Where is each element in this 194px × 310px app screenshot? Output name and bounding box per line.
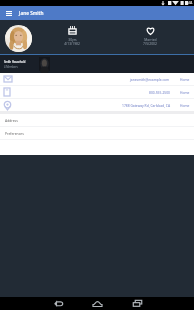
button[interactable]: Preferences xyxy=(0,127,194,139)
button[interactable]: Open navigation menu xyxy=(0,6,17,20)
staticText: 4 Members xyxy=(4,65,18,69)
button[interactable]: Married xyxy=(110,26,190,45)
staticText: Smith Household xyxy=(4,60,26,64)
button[interactable]: Address xyxy=(0,114,194,126)
button[interactable]: janesmith@example.com xyxy=(0,73,194,85)
staticText: 800-555-2500 xyxy=(149,90,170,94)
staticText: 1788 Gateway Rd, Carlsbad, CA xyxy=(122,103,170,107)
button[interactable]: 30yrs xyxy=(32,26,112,45)
button[interactable]: Back xyxy=(48,297,68,310)
button[interactable]: Home xyxy=(87,297,107,310)
staticText: 30yrs xyxy=(68,37,77,41)
staticText: 7/5/2002 xyxy=(143,41,157,45)
button[interactable]: Smith Household xyxy=(0,55,194,73)
staticText: Married xyxy=(144,37,157,41)
staticText: Address xyxy=(5,118,18,123)
staticText: Home xyxy=(180,90,190,94)
staticText: janesmith@example.com xyxy=(130,77,170,81)
staticText: Preferences xyxy=(5,131,24,136)
staticText: Home xyxy=(180,103,190,107)
staticText: Home xyxy=(180,77,190,81)
staticText: 4/13/1982 xyxy=(64,41,80,45)
button[interactable]: 800-555-2500 xyxy=(0,86,194,98)
button[interactable]: 1788 Gateway Rd, Carlsbad, CA xyxy=(0,99,194,111)
button[interactable]: Recent apps xyxy=(127,297,147,310)
staticText: 8:34 xyxy=(186,1,193,5)
staticText: Jane Smith xyxy=(19,10,44,17)
button[interactable]: Jane Smith profile photo xyxy=(5,25,32,52)
